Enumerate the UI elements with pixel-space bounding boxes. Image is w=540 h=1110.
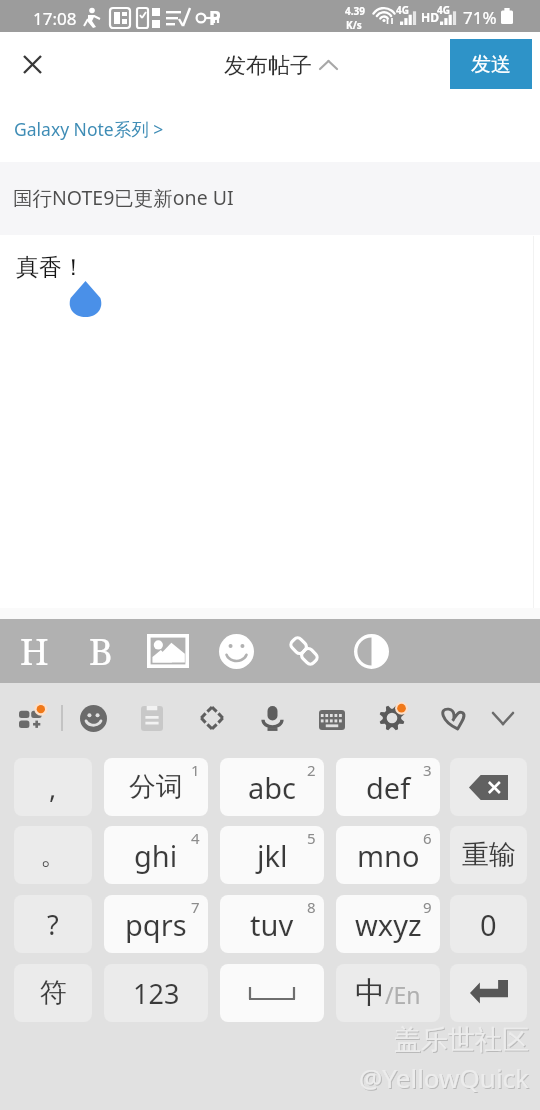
staticText: @YellowQuick xyxy=(360,1061,530,1096)
staticText: 17:08 xyxy=(33,7,77,30)
button[interactable]: 发布帖子 xyxy=(224,46,337,86)
staticText: /En xyxy=(385,979,421,1010)
staticText: 盖乐世社区 xyxy=(394,1023,529,1057)
button[interactable]: Contrast xyxy=(337,619,405,683)
button[interactable]: 符 xyxy=(14,964,92,1022)
button[interactable]: Insert image xyxy=(134,619,202,683)
staticText: B xyxy=(89,627,113,676)
button[interactable]: mno xyxy=(336,826,440,884)
button[interactable]: Close xyxy=(12,44,52,84)
staticText: abc xyxy=(248,768,297,807)
button[interactable]: 真香！ xyxy=(0,235,540,619)
staticText: 1 xyxy=(191,760,200,780)
button[interactable]: Galaxy Note系列 > xyxy=(0,100,540,158)
staticText: 盖乐世社区 xyxy=(395,1024,530,1058)
staticText: , xyxy=(49,769,57,806)
button[interactable]: 发送 xyxy=(450,39,532,89)
button[interactable]: Insert link xyxy=(270,619,338,683)
staticText: 9 xyxy=(423,897,432,917)
button[interactable]: 。 xyxy=(14,826,92,884)
staticText: 7 xyxy=(191,897,200,917)
button[interactable]: 分词 xyxy=(104,758,208,816)
staticText: H xyxy=(20,627,49,676)
staticText: 6 xyxy=(423,828,432,848)
button[interactable]: Voice input xyxy=(244,683,300,753)
button[interactable]: Emoticon xyxy=(65,683,121,753)
button[interactable]: Settings xyxy=(364,683,420,753)
button[interactable]: 重输 xyxy=(450,826,527,884)
button[interactable]: Emoji xyxy=(202,619,270,683)
button[interactable]: ghi xyxy=(104,826,208,884)
staticText: P xyxy=(209,5,221,31)
staticText: 8 xyxy=(307,897,316,917)
staticText: 71% xyxy=(463,6,497,29)
staticText: 国行NOTE9已更新one UI xyxy=(13,184,234,211)
button[interactable]: 中 xyxy=(336,964,440,1022)
button[interactable]: Favourites xyxy=(424,683,480,753)
staticText: ghi xyxy=(134,836,178,875)
staticText: 4.39 xyxy=(345,4,365,18)
staticText: def xyxy=(366,768,411,807)
staticText: 5 xyxy=(307,828,316,848)
button[interactable] xyxy=(450,758,527,816)
button[interactable]: def xyxy=(336,758,440,816)
button[interactable]: , xyxy=(14,758,92,816)
staticText: 123 xyxy=(133,975,180,1012)
button[interactable]: Move cursor xyxy=(184,683,240,753)
staticText: Galaxy Note系列 > xyxy=(14,117,164,141)
button[interactable]: tuv xyxy=(220,895,324,953)
staticText: HD xyxy=(421,9,439,25)
staticText: 。 xyxy=(40,838,67,872)
staticText: tuv xyxy=(250,905,294,944)
staticText: 4G xyxy=(396,3,409,17)
staticText: 4G xyxy=(437,3,450,17)
button[interactable]: Bold xyxy=(67,619,135,683)
staticText: 中 xyxy=(355,974,385,1012)
button[interactable]: jkl xyxy=(220,826,324,884)
staticText: 重输 xyxy=(462,838,516,872)
staticText: 分词 xyxy=(129,770,183,804)
staticText: 0 xyxy=(480,905,497,944)
button[interactable]: abc xyxy=(220,758,324,816)
staticText: 4 xyxy=(191,828,200,848)
button[interactable]: ? xyxy=(14,895,92,953)
staticText: 发布帖子 xyxy=(224,52,312,80)
staticText: 真香！ xyxy=(16,253,85,282)
staticText: wxyz xyxy=(355,905,422,944)
button[interactable]: 123 xyxy=(104,964,208,1022)
staticText: ? xyxy=(47,906,59,943)
staticText: 发送 xyxy=(471,52,511,77)
button[interactable] xyxy=(450,964,527,1022)
staticText: 3 xyxy=(423,760,432,780)
button[interactable]: Keyboard layout xyxy=(304,683,360,753)
staticText: K/s xyxy=(346,18,362,32)
button[interactable] xyxy=(220,964,324,1022)
staticText: @YellowQuick xyxy=(359,1060,529,1095)
button[interactable]: wxyz xyxy=(336,895,440,953)
staticText: 2 xyxy=(307,760,316,780)
button[interactable]: 0 xyxy=(450,895,527,953)
button[interactable]: Add shortcut xyxy=(4,683,60,753)
staticText: jkl xyxy=(257,836,288,875)
button[interactable]: 国行NOTE9已更新one UI xyxy=(0,162,540,235)
button[interactable]: Collapse keyboard xyxy=(475,683,531,753)
button[interactable]: Heading xyxy=(0,619,68,683)
staticText: 符 xyxy=(40,976,67,1010)
staticText: mno xyxy=(357,836,420,875)
button[interactable]: pqrs xyxy=(104,895,208,953)
button[interactable]: Clipboard xyxy=(124,683,180,753)
staticText: pqrs xyxy=(125,905,187,944)
